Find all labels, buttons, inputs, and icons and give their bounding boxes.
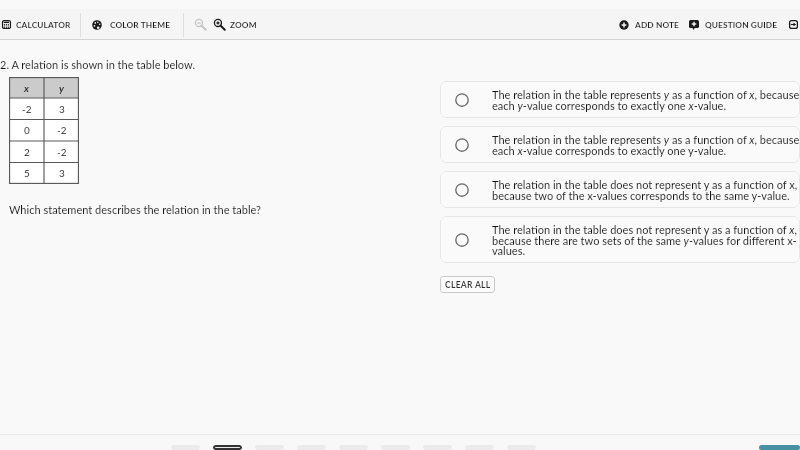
staticText: -2 (57, 124, 67, 136)
staticText: 0 (24, 124, 30, 136)
staticText: -2 (57, 146, 67, 158)
staticText: COLOR THEME (110, 20, 171, 30)
staticText: The relation in the table represents y a… (492, 88, 800, 112)
button[interactable]: ADD NOTE (619, 9, 680, 40)
button[interactable]: The relation in the table represents y a… (440, 126, 800, 163)
button[interactable]: COLOR THEME (92, 9, 171, 40)
button[interactable]: QUESTION GUIDE (689, 9, 778, 40)
button[interactable]: Zoom (195, 9, 257, 40)
staticText: The relation in the table represents y a… (492, 133, 800, 157)
staticText: y (59, 82, 64, 94)
staticText: The relation in the table does not repre… (492, 223, 798, 257)
staticText: -2 (22, 103, 32, 115)
button[interactable]: CALCULATOR (2, 9, 71, 40)
staticText: CALCULATOR (16, 20, 71, 30)
staticText: ADD NOTE (635, 20, 680, 30)
staticText: Which statement describes the relation i… (9, 203, 262, 216)
staticText: 3 (59, 103, 65, 115)
staticText: The relation in the table does not repre… (492, 178, 798, 202)
staticText: 2 (24, 146, 30, 158)
staticText: x (24, 82, 29, 94)
button[interactable] (759, 445, 800, 450)
staticText: ZOOM (230, 20, 257, 30)
button[interactable]: Exit test (789, 20, 798, 29)
button[interactable]: CLEAR ALL (440, 276, 495, 293)
staticText: 5 (24, 167, 30, 179)
button[interactable] (213, 445, 242, 450)
staticText: CLEAR ALL (445, 280, 491, 290)
staticText: QUESTION GUIDE (705, 20, 778, 30)
button[interactable]: The relation in the table does not repre… (440, 171, 800, 208)
staticText: 3 (59, 167, 65, 179)
button[interactable]: The relation in the table represents y a… (440, 81, 800, 118)
button[interactable]: The relation in the table does not repre… (440, 216, 800, 263)
staticText: 2. A relation is shown in the table belo… (0, 58, 196, 71)
